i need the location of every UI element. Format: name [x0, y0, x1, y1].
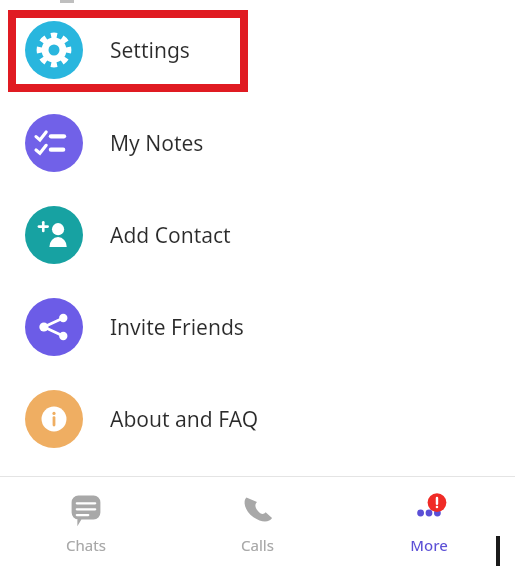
button[interactable]: Calls [171, 477, 343, 570]
staticText: Calls [241, 535, 274, 555]
button[interactable]: More [343, 477, 515, 570]
staticText: Add Contact [110, 221, 231, 250]
staticText: Chats [66, 535, 106, 555]
staticText: Settings [110, 36, 190, 65]
staticText: More [410, 535, 448, 555]
button[interactable]: Add Contact [0, 189, 515, 281]
button[interactable]: About and FAQ [0, 373, 515, 465]
button[interactable]: Settings [0, 4, 515, 96]
button[interactable]: My Notes [0, 97, 515, 189]
staticText: Invite Friends [110, 313, 244, 342]
button[interactable]: Chats [0, 477, 171, 570]
staticText: My Notes [110, 129, 204, 158]
button[interactable]: Invite Friends [0, 281, 515, 373]
staticText: About and FAQ [110, 405, 259, 434]
